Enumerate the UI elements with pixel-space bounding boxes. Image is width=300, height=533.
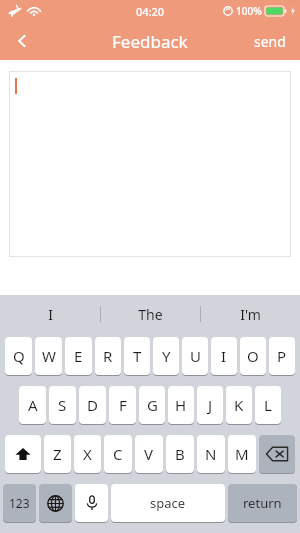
staticText: 123 xyxy=(9,495,30,511)
staticText: K xyxy=(234,395,244,415)
staticText: U xyxy=(190,346,201,366)
staticText: D xyxy=(87,395,98,415)
staticText: M xyxy=(235,444,249,464)
button[interactable]: I xyxy=(211,337,237,375)
button[interactable]: Back xyxy=(0,22,44,60)
button[interactable]: X xyxy=(74,435,101,473)
staticText: Feedback xyxy=(112,30,188,53)
staticText: X xyxy=(83,444,92,464)
button[interactable]: Backspace xyxy=(259,435,295,473)
staticText: return xyxy=(243,494,282,512)
button[interactable]: Change keyboard xyxy=(39,484,72,522)
staticText: E xyxy=(74,346,83,366)
staticText: J xyxy=(208,395,213,415)
button[interactable]: R xyxy=(95,337,121,375)
button[interactable]: S xyxy=(49,386,76,424)
staticText: send xyxy=(254,32,286,51)
staticText: V xyxy=(144,444,154,464)
staticText: L xyxy=(264,395,272,415)
button[interactable]: P xyxy=(269,337,295,375)
staticText: P xyxy=(277,346,287,366)
button[interactable]: F xyxy=(109,386,136,424)
button[interactable]: D xyxy=(79,386,106,424)
button[interactable]: Z xyxy=(44,435,71,473)
staticText: H xyxy=(175,395,187,415)
button[interactable]: 123 xyxy=(3,484,36,522)
staticText: I'm xyxy=(240,305,261,324)
button[interactable]: J xyxy=(197,386,223,424)
button[interactable]: Q xyxy=(5,337,32,375)
button[interactable]: return xyxy=(228,484,297,522)
staticText: 04:20 xyxy=(136,4,165,19)
staticText: B xyxy=(175,444,185,464)
button[interactable]: I xyxy=(0,295,100,333)
button[interactable]: V xyxy=(135,435,163,473)
button[interactable]: Y xyxy=(153,337,179,375)
staticText: O xyxy=(247,346,259,366)
button[interactable]: space xyxy=(111,484,225,522)
staticText: R xyxy=(103,346,113,366)
button[interactable]: N xyxy=(197,435,225,473)
staticText: Z xyxy=(53,444,62,464)
button[interactable]: G xyxy=(139,386,165,424)
button[interactable]: C xyxy=(104,435,132,473)
button[interactable]: U xyxy=(182,337,208,375)
staticText: T xyxy=(133,346,142,366)
staticText: I xyxy=(48,305,53,324)
button[interactable]: E xyxy=(65,337,92,375)
button[interactable]: O xyxy=(240,337,266,375)
staticText: S xyxy=(58,395,67,415)
staticText: W xyxy=(42,346,56,366)
staticText: 100% xyxy=(236,4,262,18)
staticText: C xyxy=(113,444,123,464)
button[interactable]: H xyxy=(168,386,194,424)
staticText: Q xyxy=(13,346,25,366)
button[interactable]: Voice input xyxy=(75,484,108,522)
button[interactable]: W xyxy=(35,337,62,375)
staticText: space xyxy=(150,494,186,512)
button[interactable]: M xyxy=(228,435,256,473)
button[interactable]: I'm xyxy=(201,295,300,333)
staticText: I xyxy=(221,346,227,366)
staticText: F xyxy=(119,395,127,415)
staticText: The xyxy=(138,305,163,324)
staticText: G xyxy=(147,395,158,415)
button[interactable] xyxy=(9,71,291,257)
staticText: N xyxy=(205,444,217,464)
button[interactable]: Shift xyxy=(5,435,41,473)
staticText: A xyxy=(28,395,38,415)
button[interactable]: B xyxy=(166,435,194,473)
button[interactable]: L xyxy=(255,386,281,424)
button[interactable]: A xyxy=(19,386,46,424)
staticText: Y xyxy=(162,346,171,366)
button[interactable]: send xyxy=(240,22,300,60)
button[interactable]: The xyxy=(101,295,200,333)
button[interactable]: T xyxy=(124,337,150,375)
button[interactable]: K xyxy=(226,386,252,424)
